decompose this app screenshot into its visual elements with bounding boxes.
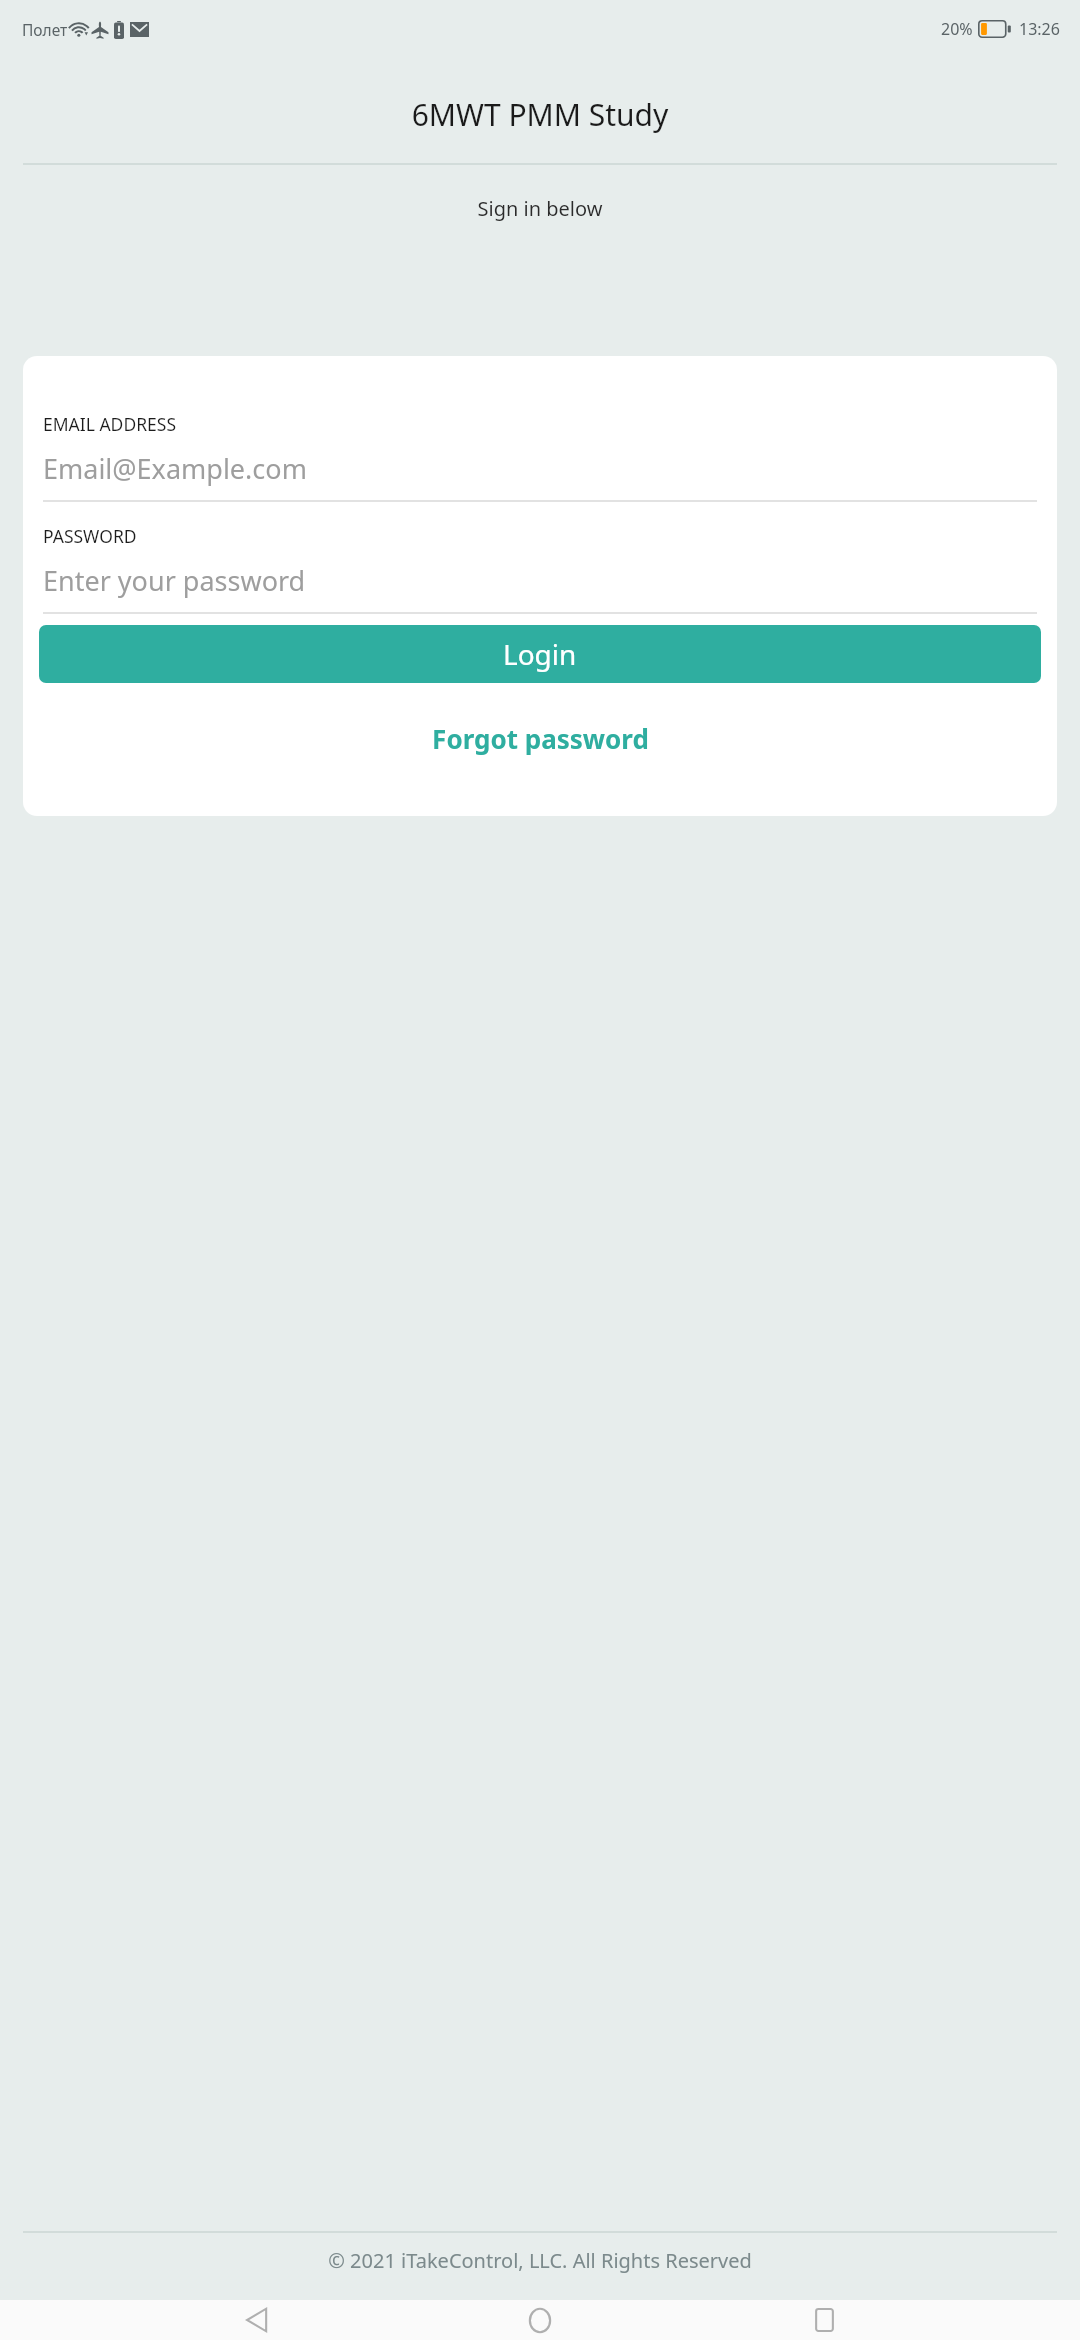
staticText: Enter your password [43, 562, 306, 599]
staticText: Полет [22, 19, 68, 40]
button[interactable]: Home [512, 2300, 568, 2340]
staticText: © 2021 iTakeControl, LLC. All Rights Res… [0, 2247, 1080, 2274]
button[interactable]: Recent apps [796, 2300, 852, 2340]
staticText: 20% [941, 18, 973, 40]
staticText: Sign in below [0, 195, 1080, 222]
staticText: EMAIL ADDRESS [43, 412, 176, 436]
button[interactable]: Login [39, 625, 1041, 683]
staticText: Email@Example.com [43, 450, 307, 487]
staticText: Login [503, 635, 577, 673]
staticText: 13:26 [1019, 18, 1060, 40]
button[interactable]: Password field [43, 524, 1037, 614]
button[interactable]: Email address field [43, 412, 1037, 502]
staticText: Forgot password [432, 721, 649, 756]
staticText: PASSWORD [43, 524, 137, 548]
staticText: 6MWT PMM Study [0, 94, 1080, 135]
button[interactable]: Back [228, 2300, 284, 2340]
button[interactable]: Forgot password [23, 721, 1057, 756]
